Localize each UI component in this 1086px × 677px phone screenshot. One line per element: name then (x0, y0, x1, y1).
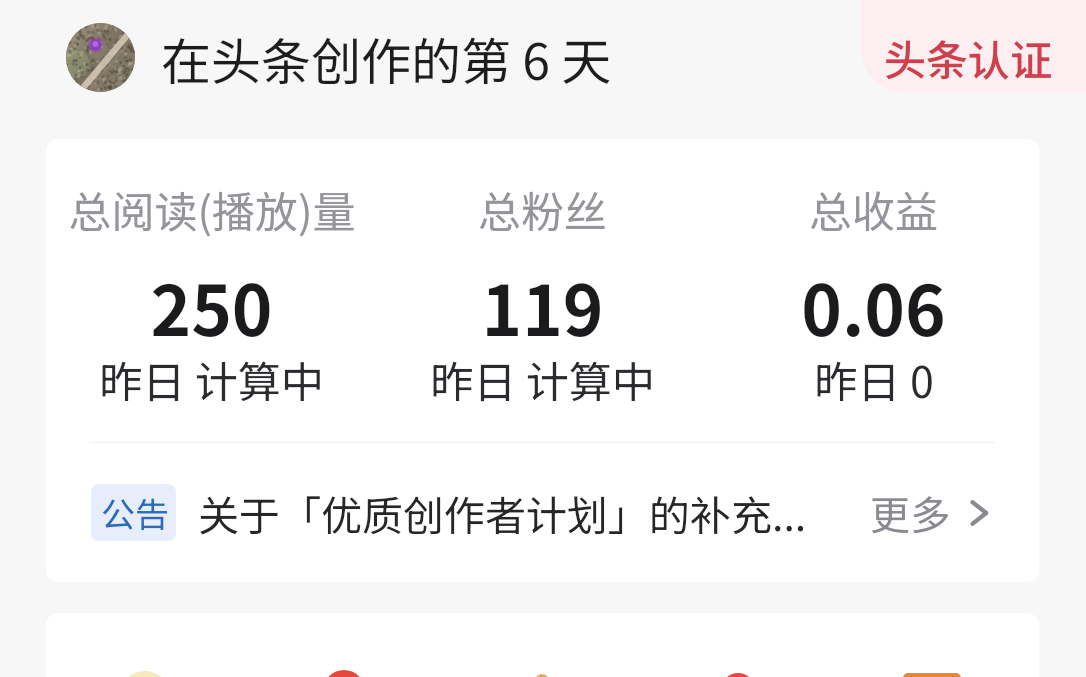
button[interactable]: Profile avatar (66, 23, 135, 92)
staticText: 在头条创作的第 6 天 (161, 22, 612, 94)
staticText: 公告 (101, 488, 169, 537)
button[interactable]: Quick action (120, 671, 170, 677)
staticText: 250 (150, 256, 273, 356)
button[interactable]: 公告 (46, 443, 1039, 582)
button[interactable]: 总收益 (708, 139, 1039, 418)
staticText: 总收益 (809, 178, 938, 240)
button[interactable]: 总阅读(播放)量 (46, 139, 377, 418)
staticText: 更多 (870, 484, 950, 542)
staticText: 总粉丝 (478, 178, 607, 240)
staticText: 头条认证 (884, 27, 1053, 88)
button[interactable]: 更多 (870, 484, 994, 542)
button[interactable]: 头条认证 (861, 0, 1086, 93)
button[interactable]: Quick action (903, 673, 961, 677)
staticText: 119 (481, 256, 604, 356)
staticText: 昨日 计算中 (99, 348, 324, 410)
button[interactable]: Quick action (323, 670, 365, 677)
staticText: 关于「优质创作者计划」的补充... (198, 483, 807, 542)
other: More (964, 498, 994, 528)
staticText: 总阅读(播放)量 (68, 178, 356, 240)
button[interactable]: 总粉丝 (377, 139, 708, 418)
staticText: 0.06 (801, 256, 946, 356)
button[interactable]: Quick action (535, 674, 549, 677)
staticText: 昨日 计算中 (430, 348, 655, 410)
staticText: 昨日 0 (814, 348, 934, 410)
button[interactable]: Quick action (721, 673, 755, 677)
